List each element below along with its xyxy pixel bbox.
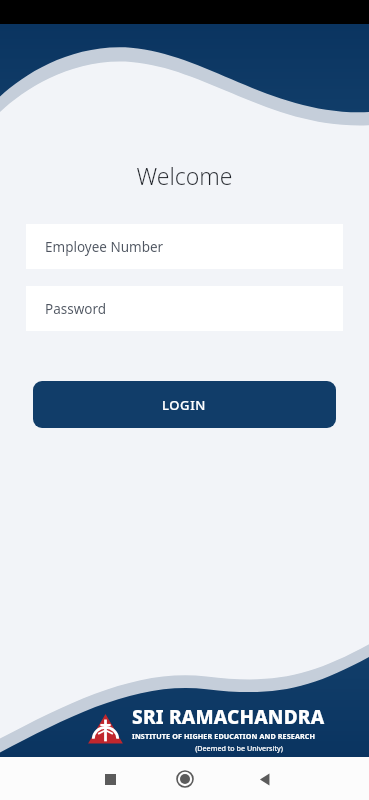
button[interactable]: Employee Number (26, 224, 343, 269)
staticText: Password (45, 300, 107, 318)
button[interactable]: Back (249, 764, 279, 794)
staticText: (Deemed to be University) (132, 743, 346, 753)
button[interactable]: LOGIN (33, 381, 336, 428)
button[interactable]: Home (169, 763, 201, 795)
button[interactable]: Recent apps (95, 764, 125, 794)
staticText: Employee Number (45, 238, 164, 256)
staticText: Welcome (0, 160, 369, 191)
staticText: INSTITUTE OF HIGHER EDUCATION AND RESEAR… (132, 731, 316, 741)
button[interactable]: Password (26, 286, 343, 331)
staticText: LOGIN (162, 396, 207, 414)
staticText: SRI RAMACHANDRA (132, 704, 325, 730)
